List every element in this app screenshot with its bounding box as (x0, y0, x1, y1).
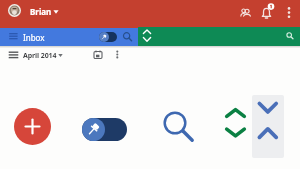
button[interactable] (138, 27, 300, 46)
button[interactable] (14, 108, 51, 145)
button[interactable] (238, 5, 254, 21)
button[interactable] (99, 32, 117, 42)
button[interactable] (223, 104, 248, 138)
staticText: Brian (30, 6, 52, 17)
button[interactable] (259, 4, 276, 21)
button[interactable] (252, 95, 284, 158)
button[interactable] (0, 28, 138, 46)
button[interactable] (283, 5, 296, 21)
button[interactable] (82, 118, 127, 141)
button[interactable]: Brian (30, 6, 64, 19)
staticText: Inbox (23, 32, 45, 43)
button[interactable] (160, 108, 202, 150)
staticText: April 2014 (23, 51, 57, 61)
button[interactable] (8, 4, 21, 17)
button[interactable] (0, 48, 130, 67)
